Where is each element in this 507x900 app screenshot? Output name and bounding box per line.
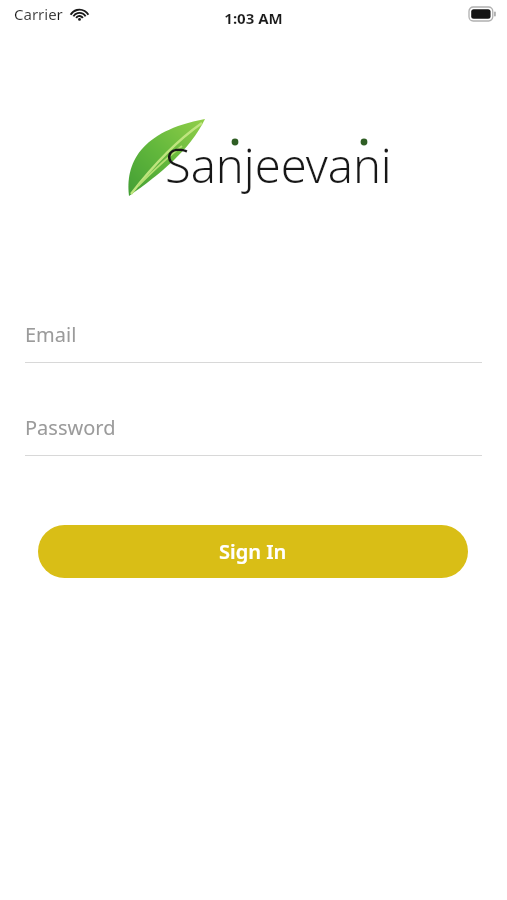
- staticText: Carrier: [14, 4, 63, 24]
- button[interactable]: Email: [25, 306, 482, 363]
- staticText: Sign In: [219, 538, 287, 565]
- button[interactable]: Password: [25, 399, 482, 456]
- staticText: Sanjeevani: [165, 133, 392, 197]
- staticText: 1:03 AM: [224, 8, 283, 28]
- button[interactable]: Sign In: [38, 525, 468, 578]
- staticText: Password: [25, 414, 116, 441]
- staticText: Email: [25, 321, 77, 348]
